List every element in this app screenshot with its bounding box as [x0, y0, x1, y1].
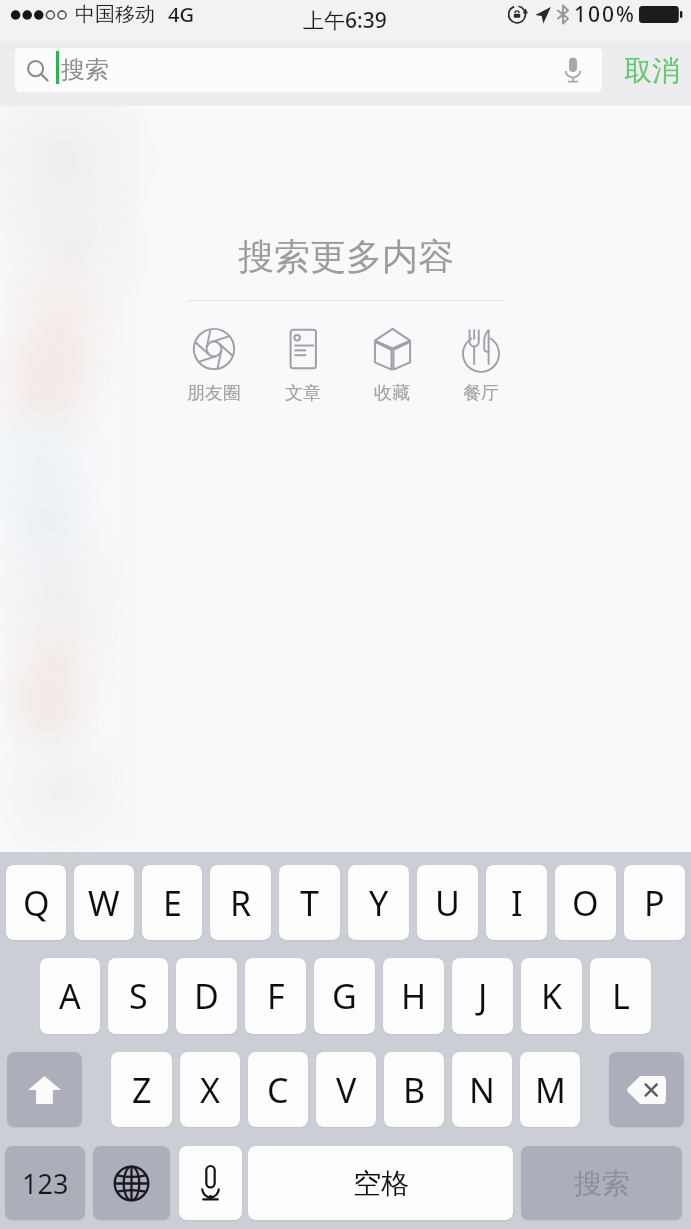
staticText: 100% — [574, 0, 636, 29]
button[interactable]: O — [555, 865, 616, 940]
staticText: H — [401, 973, 427, 1019]
staticText: 收藏 — [374, 382, 410, 405]
staticText: D — [194, 973, 219, 1019]
button[interactable]: 收藏 — [353, 327, 431, 405]
button[interactable]: Q — [6, 865, 66, 940]
staticText: O — [572, 880, 599, 926]
button[interactable]: 123 — [5, 1146, 85, 1220]
button[interactable]: Voice search — [556, 50, 590, 90]
button[interactable]: G — [314, 958, 375, 1034]
staticText: M — [535, 1067, 566, 1113]
button[interactable]: W — [74, 865, 134, 940]
staticText: A — [59, 973, 81, 1019]
button[interactable]: 搜索 — [15, 48, 602, 92]
staticText: 搜索 — [574, 1166, 630, 1201]
button[interactable]: R — [210, 865, 271, 940]
button[interactable]: D — [176, 958, 237, 1034]
button[interactable]: 空格 — [248, 1146, 513, 1220]
staticText: 取消 — [624, 53, 680, 88]
staticText: U — [435, 880, 460, 926]
button[interactable]: 取消 — [620, 48, 684, 92]
button[interactable]: E — [142, 865, 202, 940]
staticText: F — [267, 973, 285, 1019]
staticText: 餐厅 — [463, 382, 499, 405]
staticText: Y — [369, 880, 389, 926]
button[interactable]: P — [624, 865, 685, 940]
button[interactable]: K — [521, 958, 582, 1034]
staticText: P — [644, 880, 665, 926]
button[interactable]: C — [248, 1052, 308, 1127]
staticText: V — [336, 1067, 357, 1113]
staticText: R — [230, 880, 252, 926]
staticText: 123 — [22, 1165, 69, 1202]
staticText: 中国移动 — [75, 2, 155, 27]
button[interactable]: Y — [348, 865, 409, 940]
button[interactable]: A — [40, 958, 100, 1034]
button[interactable]: I — [486, 865, 547, 940]
staticText: 上午6:39 — [303, 6, 387, 35]
button[interactable]: L — [590, 958, 651, 1034]
staticText: Q — [23, 880, 50, 926]
staticText: B — [403, 1067, 426, 1113]
staticText: C — [267, 1067, 289, 1113]
staticText: I — [511, 880, 523, 926]
staticText: Z — [132, 1067, 152, 1113]
button[interactable]: S — [108, 958, 168, 1034]
button[interactable]: H — [383, 958, 444, 1034]
button[interactable]: J — [452, 958, 513, 1034]
staticText: S — [129, 973, 148, 1019]
staticText: K — [541, 973, 563, 1019]
button[interactable]: 文章 — [264, 327, 342, 405]
button[interactable]: Switch language — [93, 1146, 170, 1220]
staticText: 空格 — [353, 1166, 409, 1201]
button[interactable]: Voice input — [179, 1146, 242, 1220]
button[interactable]: X — [180, 1052, 240, 1127]
button[interactable]: N — [452, 1052, 512, 1127]
button[interactable]: T — [279, 865, 340, 940]
button[interactable]: Delete — [609, 1052, 684, 1127]
staticText: W — [88, 880, 120, 926]
staticText: T — [300, 880, 319, 926]
staticText: 朋友圈 — [187, 382, 241, 405]
staticText: N — [469, 1067, 495, 1113]
button[interactable]: 搜索 — [521, 1146, 682, 1220]
staticText: 4G — [168, 1, 194, 28]
button[interactable]: M — [520, 1052, 580, 1127]
staticText: 文章 — [285, 382, 321, 405]
staticText: 搜索 — [61, 55, 109, 85]
button[interactable]: B — [384, 1052, 444, 1127]
button[interactable]: U — [417, 865, 478, 940]
staticText: L — [612, 973, 630, 1019]
staticText: 搜索更多内容 — [238, 234, 454, 279]
button[interactable]: F — [245, 958, 306, 1034]
staticText: J — [478, 973, 488, 1019]
button[interactable]: Z — [111, 1052, 172, 1127]
button[interactable]: 餐厅 — [442, 327, 520, 405]
button[interactable]: V — [316, 1052, 376, 1127]
staticText: E — [163, 880, 182, 926]
staticText: G — [332, 973, 357, 1019]
staticText: X — [200, 1067, 220, 1113]
button[interactable]: Shift — [7, 1052, 82, 1127]
button[interactable]: 朋友圈 — [175, 327, 253, 405]
